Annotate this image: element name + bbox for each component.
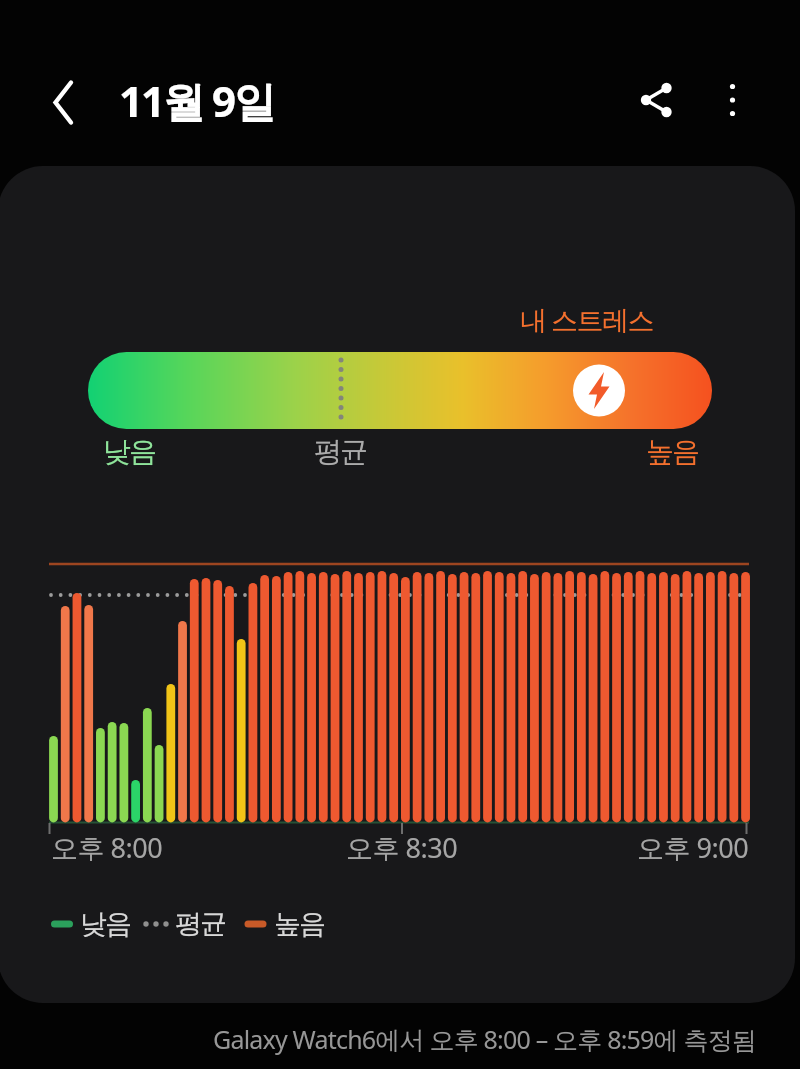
- staticText: 오후 9:00: [637, 829, 749, 866]
- button[interactable]: [708, 72, 760, 128]
- staticText: 낮음: [104, 434, 156, 469]
- button[interactable]: [40, 75, 90, 130]
- staticText: 오후 8:30: [346, 829, 458, 866]
- staticText: 높음: [275, 907, 325, 941]
- staticText: 11월 9일: [119, 72, 274, 129]
- staticText: 낮음: [81, 907, 131, 941]
- staticText: 평균: [315, 434, 367, 469]
- staticText: 높음: [647, 434, 699, 469]
- staticText: 평균: [176, 907, 226, 941]
- staticText: 내 스트레스: [520, 301, 654, 338]
- button[interactable]: [628, 72, 684, 128]
- staticText: 오후 8:00: [51, 829, 163, 866]
- staticText: Galaxy Watch6에서 오후 8:00 – 오후 8:59에 측정됨: [213, 1022, 757, 1056]
